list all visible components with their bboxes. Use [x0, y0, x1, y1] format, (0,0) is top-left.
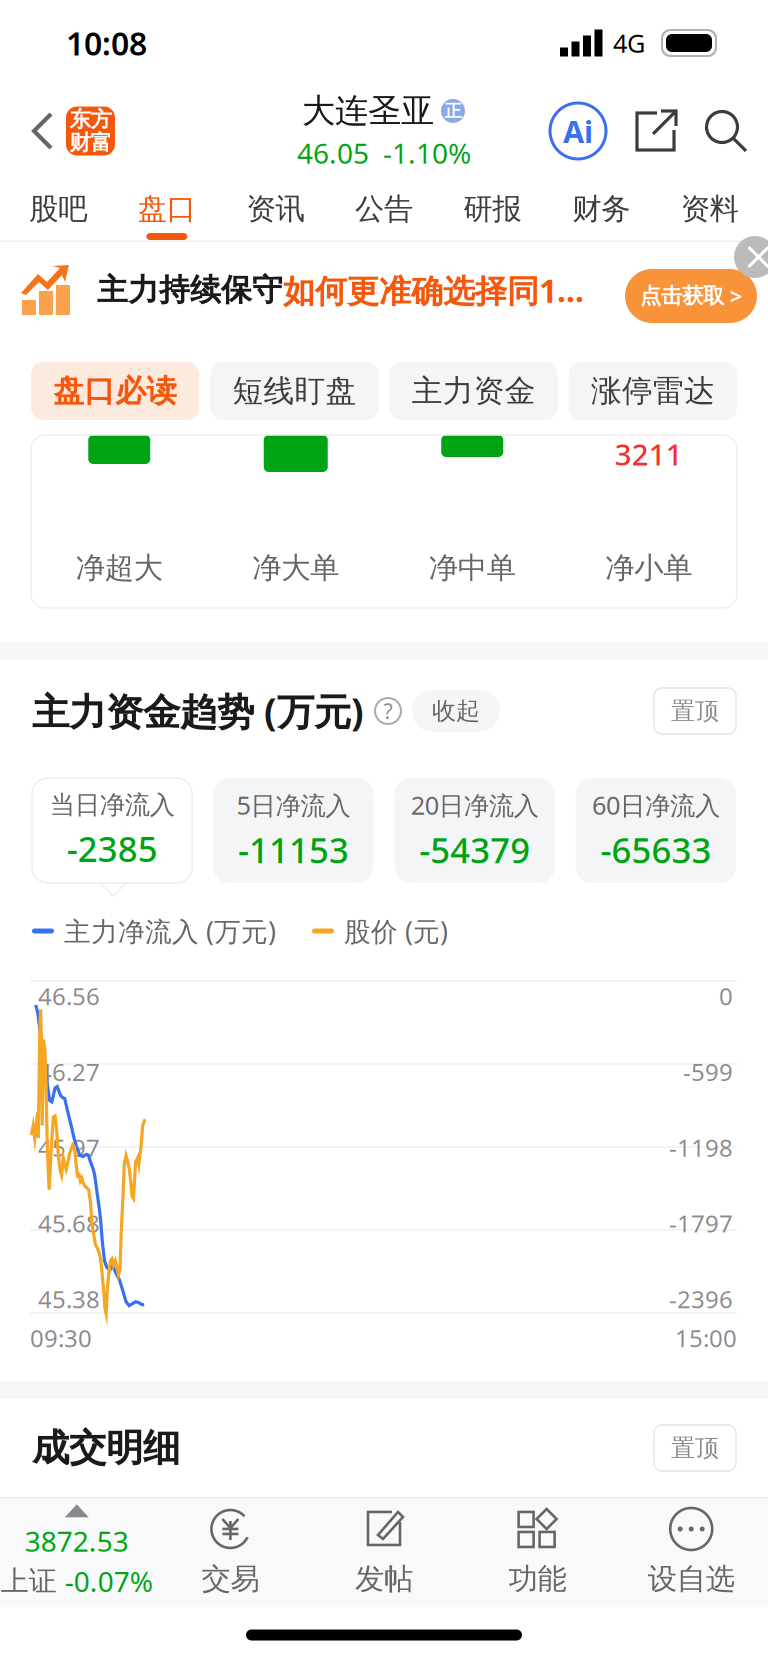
staticText: -11153	[238, 827, 349, 873]
staticText: 5日净流入	[236, 788, 350, 822]
button[interactable]: Back	[20, 94, 66, 168]
button[interactable]: Help	[364, 687, 412, 735]
staticText: 主力资金趋势 (万元)	[32, 686, 364, 736]
staticText: ?	[383, 697, 392, 725]
button[interactable]: 功能	[461, 1497, 614, 1607]
staticText: 短线盯盘	[232, 372, 356, 410]
staticText: 当日净流入	[50, 789, 175, 820]
staticText: 东方	[69, 106, 111, 132]
staticText: -599	[683, 1056, 733, 1088]
staticText: 4G	[613, 26, 645, 60]
staticText: 净小单	[605, 550, 692, 586]
staticText: 上证	[1, 1564, 57, 1598]
button[interactable]: Share	[618, 94, 694, 168]
staticText: 3211	[615, 434, 683, 473]
staticText: 46.27	[38, 1056, 100, 1088]
staticText: 3872.53	[25, 1522, 129, 1559]
staticText: 财富	[69, 129, 111, 156]
staticText: 交易	[201, 1561, 259, 1597]
staticText: 盘口必读	[53, 372, 177, 410]
staticText: 研报	[464, 191, 522, 227]
button[interactable]: 盘口必读	[31, 362, 199, 420]
staticText: 盘口	[138, 191, 196, 227]
button[interactable]: 收起	[412, 690, 500, 732]
staticText: -65633	[600, 827, 711, 873]
staticText: 设自选	[648, 1561, 735, 1597]
staticText: 发帖	[355, 1561, 413, 1597]
staticText: -2385	[67, 825, 158, 871]
button[interactable]: 当日净流入	[32, 778, 192, 883]
staticText: 收起	[432, 696, 480, 726]
button[interactable]: 财务	[547, 176, 655, 242]
staticText: 财务	[572, 191, 630, 227]
staticText: 涨停雷达	[591, 372, 715, 410]
staticText: 资料	[681, 191, 739, 227]
button[interactable]: 3872.53	[0, 1497, 154, 1607]
staticText: -1797	[669, 1207, 733, 1239]
staticText: 15:00	[675, 1322, 737, 1354]
button[interactable]: 交易	[154, 1497, 307, 1607]
button[interactable]: 涨停雷达	[569, 362, 737, 420]
staticText: 股价 (元)	[344, 913, 448, 949]
staticText: 股吧	[29, 191, 87, 227]
button[interactable]: 60日净流入	[576, 778, 736, 883]
staticText: 0	[719, 980, 733, 1012]
staticText: 20日净流入	[411, 788, 539, 822]
staticText: 成交明细	[32, 1425, 180, 1471]
button[interactable]: 资讯	[221, 176, 330, 242]
staticText: 点击获取	[640, 283, 724, 309]
staticText: -1198	[669, 1132, 733, 1163]
button[interactable]: 公告	[330, 176, 438, 242]
staticText: 45.68	[38, 1207, 100, 1239]
staticText: 60日净流入	[592, 788, 720, 822]
staticText: 公告	[355, 191, 413, 227]
staticText: 置顶	[671, 1433, 719, 1463]
staticText: 主力净流入 (万元)	[64, 913, 276, 949]
staticText: 46.05 -1.10%	[297, 134, 471, 172]
staticText: Ai	[563, 111, 593, 151]
button[interactable]: 资料	[655, 176, 764, 242]
staticText: 45.38	[38, 1283, 100, 1315]
button[interactable]: 5日净流入	[213, 778, 373, 883]
staticText: 净大单	[252, 550, 339, 586]
staticText: 主力持续保守	[97, 271, 283, 309]
staticText: 46.56	[38, 980, 100, 1012]
staticText: 净超大	[76, 550, 163, 586]
staticText: 45.97	[38, 1132, 100, 1163]
staticText: -2396	[669, 1283, 733, 1315]
button[interactable]: AI assistant	[538, 94, 618, 168]
staticText: 净中单	[429, 550, 516, 586]
button[interactable]: 股吧	[4, 176, 113, 242]
button[interactable]: 主力资金	[389, 362, 558, 420]
button[interactable]: 设自选	[614, 1497, 768, 1607]
button[interactable]: 短线盯盘	[210, 362, 378, 420]
button[interactable]: 主力持续保守	[0, 242, 768, 338]
staticText: -0.07%	[65, 1562, 153, 1600]
staticText: 如何更准确选择同1方向	[283, 268, 615, 311]
staticText: -54379	[419, 827, 530, 873]
staticText: 置顶	[671, 696, 719, 726]
button[interactable]: 发帖	[307, 1497, 461, 1607]
button[interactable]: Search	[694, 94, 758, 168]
button[interactable]: East Money home	[66, 106, 115, 155]
staticText: 主力资金	[412, 372, 536, 410]
button[interactable]: 置顶	[654, 688, 736, 734]
button[interactable]: Close ad	[735, 242, 768, 278]
button[interactable]: 20日净流入	[394, 778, 555, 883]
staticText: 09:30	[30, 1322, 92, 1354]
button[interactable]: 盘口	[113, 176, 221, 242]
staticText: >	[730, 282, 742, 310]
staticText: 正	[444, 100, 461, 122]
staticText: 功能	[509, 1561, 567, 1597]
staticText: 资讯	[246, 191, 304, 227]
staticText: 大连圣亚	[302, 90, 434, 131]
button[interactable]: 置顶	[654, 1425, 736, 1471]
button[interactable]: 研报	[438, 176, 547, 242]
staticText: 10:08	[66, 22, 147, 64]
